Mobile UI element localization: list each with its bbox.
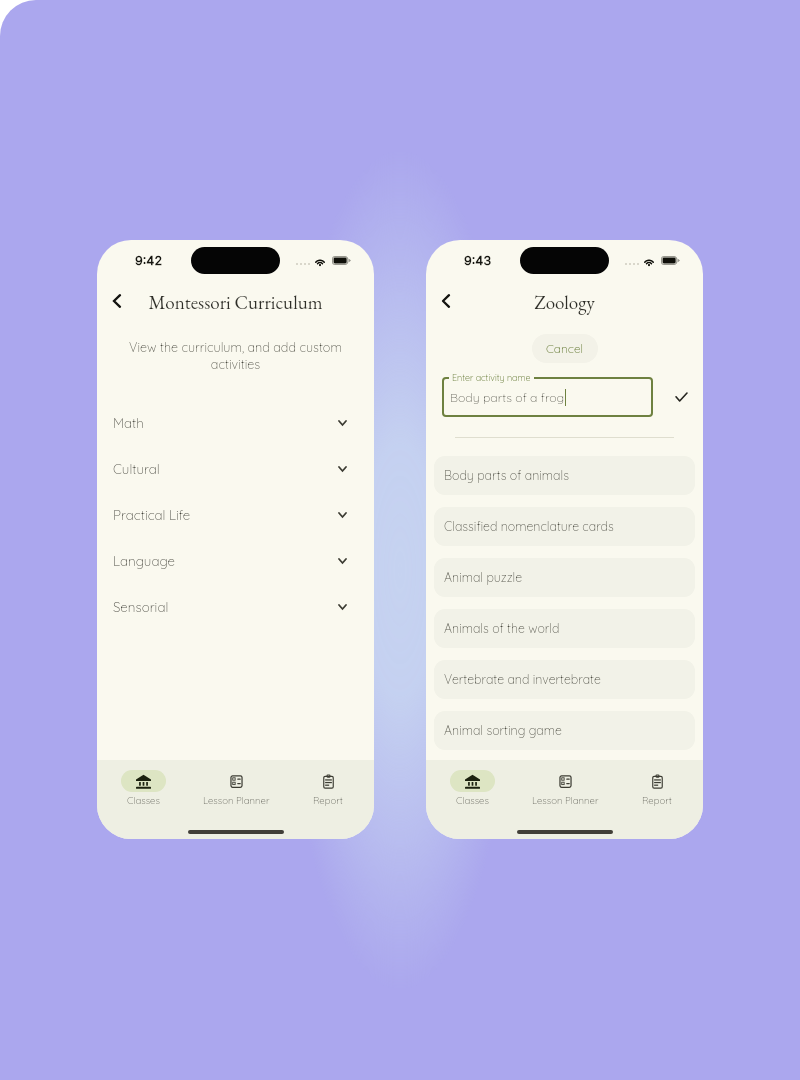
- staticText: Enter activity name: [452, 372, 531, 383]
- staticText: Classified nomenclature cards: [444, 519, 614, 534]
- staticText: Animals of the world: [444, 621, 560, 636]
- staticText: Cultural: [113, 461, 160, 478]
- button[interactable]: Confirm: [669, 385, 693, 409]
- button[interactable]: Report: [282, 770, 374, 806]
- button[interactable]: Body parts of animals: [434, 456, 695, 495]
- button[interactable]: Back: [102, 286, 132, 316]
- button[interactable]: Animals of the world: [434, 609, 695, 648]
- staticText: Lesson Planner: [203, 794, 270, 806]
- staticText: Zoology: [426, 290, 703, 315]
- button[interactable]: Lesson Planner: [519, 770, 611, 806]
- staticText: Report: [642, 794, 672, 806]
- staticText: Montessori Curriculum: [97, 290, 374, 315]
- staticText: Body parts of a frog: [450, 390, 565, 405]
- button[interactable]: Animal puzzle: [434, 558, 695, 597]
- button[interactable]: Cultural: [97, 446, 374, 492]
- staticText: Lesson Planner: [532, 794, 599, 806]
- staticText: Cancel: [546, 341, 584, 356]
- staticText: Body parts of animals: [444, 468, 569, 483]
- button[interactable]: Sensorial: [97, 584, 374, 630]
- button[interactable]: Classified nomenclature cards: [434, 507, 695, 546]
- button[interactable]: Language: [97, 538, 374, 584]
- staticText: Sensorial: [113, 599, 169, 616]
- button[interactable]: Cancel: [532, 334, 598, 363]
- button[interactable]: Classes: [426, 770, 519, 806]
- staticText: Report: [313, 794, 343, 806]
- staticText: Animal sorting game: [444, 723, 562, 738]
- button[interactable]: Math: [97, 400, 374, 446]
- button[interactable]: Report: [611, 770, 703, 806]
- staticText: Vertebrate and invertebrate: [444, 672, 601, 687]
- staticText: Classes: [456, 794, 489, 806]
- staticText: 9:42: [135, 253, 163, 268]
- button[interactable]: Classes: [97, 770, 190, 806]
- staticText: Math: [113, 415, 144, 432]
- staticText: Practical Life: [113, 507, 191, 524]
- staticText: View the curriculum, and add custom acti…: [115, 339, 356, 372]
- staticText: Animal puzzle: [444, 570, 523, 585]
- button[interactable]: Lesson Planner: [190, 770, 282, 806]
- staticText: 9:43: [464, 253, 492, 268]
- button[interactable]: Back: [431, 286, 461, 316]
- staticText: Language: [113, 553, 175, 570]
- staticText: Classes: [127, 794, 160, 806]
- button[interactable]: Vertebrate and invertebrate: [434, 660, 695, 699]
- button[interactable]: Animal sorting game: [434, 711, 695, 750]
- button[interactable]: Practical Life: [97, 492, 374, 538]
- button[interactable]: Body parts of a frog: [442, 377, 653, 417]
